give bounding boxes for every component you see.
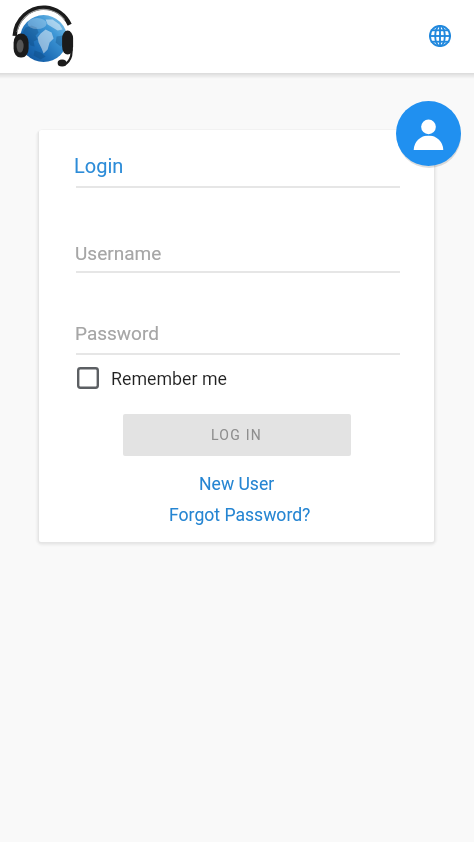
button[interactable]: LOG IN (123, 414, 351, 456)
button[interactable]: Change language (416, 13, 464, 61)
staticText: Forgot Password? (169, 505, 311, 526)
staticText: New User (199, 474, 275, 495)
staticText: Login (74, 154, 124, 177)
button[interactable]: Remember me (70, 361, 240, 395)
button[interactable]: Account (396, 101, 461, 166)
staticText: Username (75, 242, 162, 264)
button[interactable]: New User (157, 470, 317, 498)
staticText: LOG IN (211, 427, 263, 443)
staticText: Remember me (111, 368, 227, 389)
button[interactable]: Forgot Password? (160, 501, 320, 529)
staticText: Password (75, 322, 159, 344)
